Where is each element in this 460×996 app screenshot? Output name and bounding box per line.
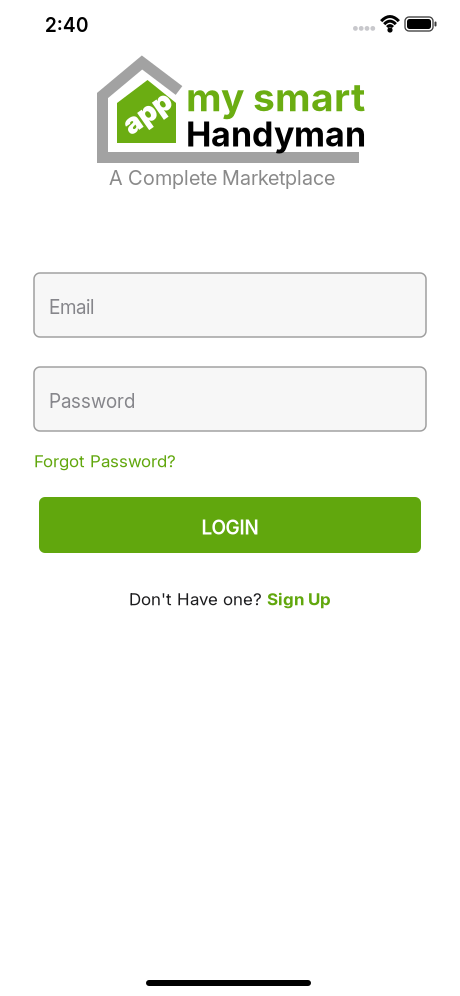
staticText: Password (49, 390, 135, 412)
staticText: Handyman (186, 114, 366, 154)
staticText: 2:40 (45, 14, 88, 36)
staticText: Forgot Password? (34, 451, 176, 471)
button[interactable]: Sign Up (267, 589, 331, 609)
staticText: app (120, 95, 173, 129)
staticText: my smart (186, 74, 365, 120)
button[interactable]: Forgot Password? (34, 451, 176, 471)
staticText: Email (49, 296, 94, 318)
staticText: Sign Up (267, 589, 331, 609)
button[interactable]: LOGIN (39, 497, 421, 553)
staticText: Don't Have one? (129, 589, 262, 609)
staticText: LOGIN (201, 516, 258, 539)
staticText: A Complete Marketplace (109, 166, 335, 190)
